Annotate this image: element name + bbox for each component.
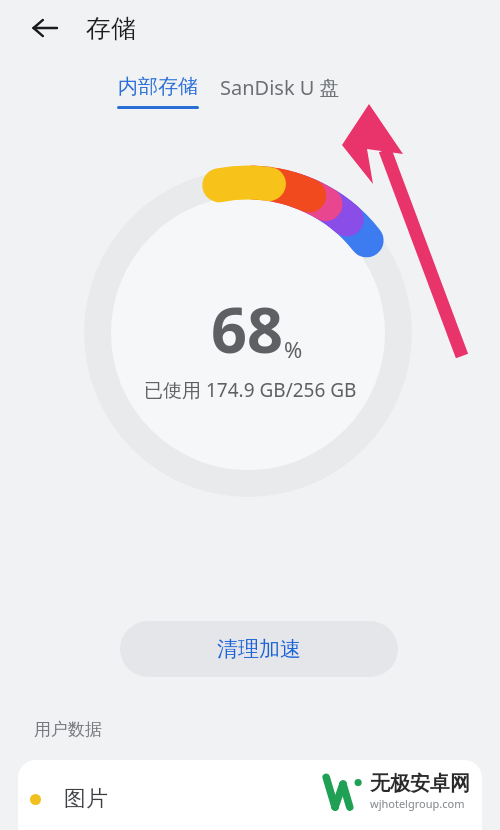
button[interactable]: 清理加速 [120, 621, 398, 677]
button[interactable]: SanDisk U 盘 [220, 74, 340, 101]
button[interactable]: 图片 [18, 760, 482, 830]
staticText: 清理加速 [217, 636, 301, 662]
staticText: 无极安卓网 [370, 771, 470, 796]
staticText: 68 [211, 286, 284, 372]
staticText: % [284, 334, 303, 364]
button[interactable]: Back [22, 5, 68, 51]
staticText: 用户数据 [34, 719, 102, 740]
staticText: 图片 [64, 785, 108, 813]
staticText: wjhotelgroup.com [370, 796, 465, 811]
staticText: 已使用 174.9 GB/256 GB [144, 377, 357, 403]
button[interactable]: 内部存储 [117, 74, 199, 109]
staticText: 内部存储 [118, 74, 198, 99]
staticText: SanDisk U 盘 [220, 74, 340, 101]
staticText: 存储 [86, 13, 136, 44]
